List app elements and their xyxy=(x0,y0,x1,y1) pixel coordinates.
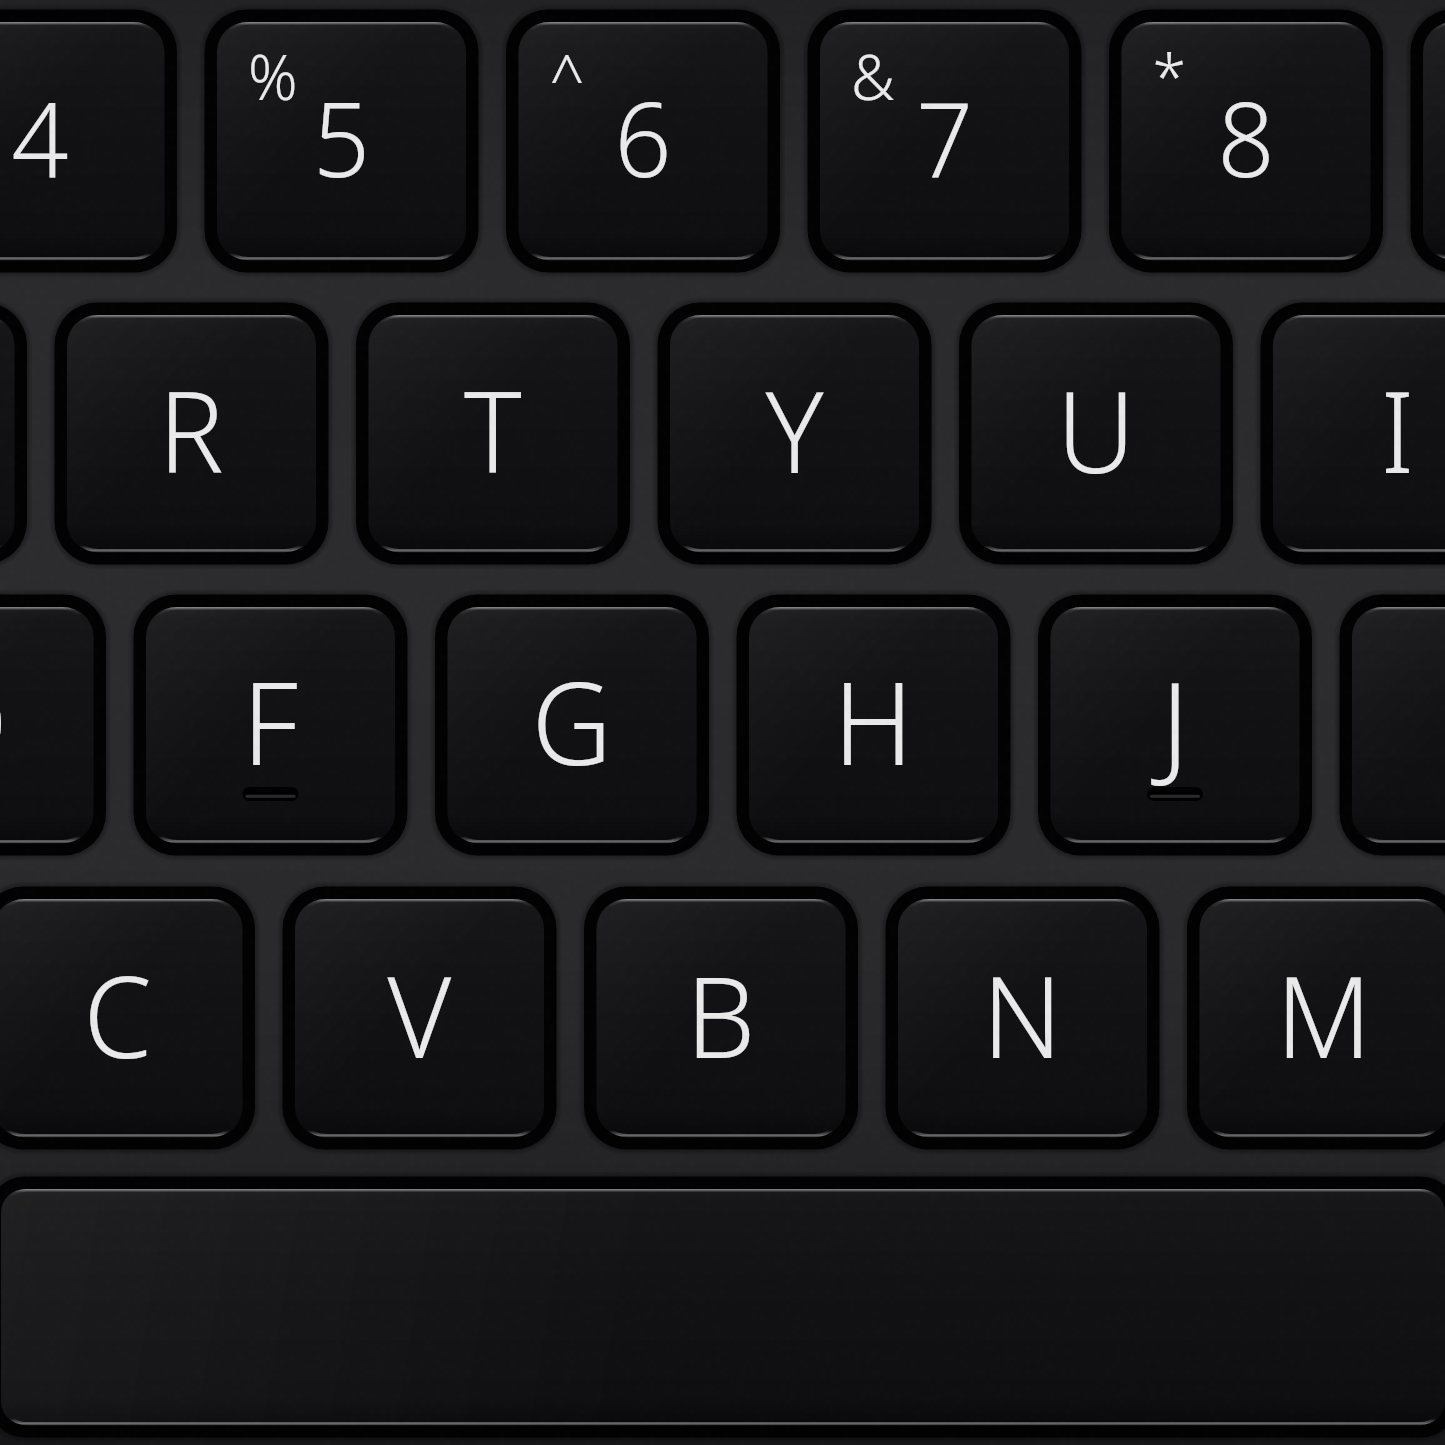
button[interactable]: I key xyxy=(1273,315,1445,552)
button[interactable]: J key xyxy=(1051,607,1300,843)
button[interactable]: Space bar xyxy=(1,1189,1445,1425)
button[interactable]: 8 key (shift *) xyxy=(1122,22,1371,260)
button[interactable]: T key xyxy=(369,315,618,552)
button[interactable]: E key xyxy=(0,315,15,552)
button[interactable]: G key xyxy=(448,607,697,843)
button[interactable]: U key xyxy=(972,315,1221,552)
button[interactable]: K key xyxy=(1352,607,1445,843)
button[interactable]: B key xyxy=(597,899,846,1137)
button[interactable]: 6 key (shift ^) xyxy=(519,22,768,260)
button[interactable]: D key xyxy=(0,607,94,843)
button[interactable]: C key xyxy=(0,899,243,1137)
button[interactable]: N key xyxy=(898,899,1147,1137)
button[interactable]: Y key xyxy=(670,315,919,552)
button[interactable]: R key xyxy=(67,315,316,552)
button[interactable]: 5 key (shift %) xyxy=(217,22,466,260)
button[interactable]: 7 key (shift &) xyxy=(820,22,1069,260)
button[interactable]: 4 key (shift $) xyxy=(0,22,165,260)
button[interactable]: H key xyxy=(749,607,998,843)
button[interactable]: M key xyxy=(1200,899,1445,1137)
button[interactable]: F key xyxy=(146,607,395,843)
button[interactable]: 9 key (shift () xyxy=(1423,22,1445,260)
button[interactable]: V key xyxy=(295,899,544,1137)
